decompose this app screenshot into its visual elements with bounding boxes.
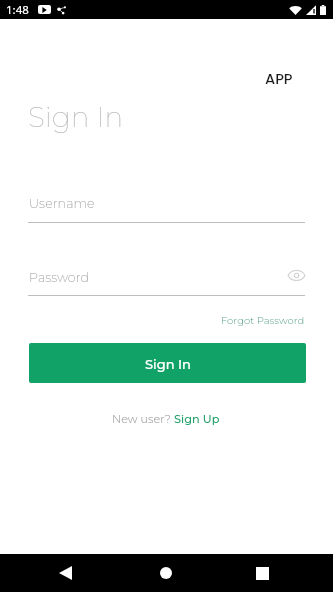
button[interactable]: Username [28, 186, 305, 223]
button[interactable]: Forgot Password [221, 314, 305, 326]
button[interactable]: Back [49, 557, 81, 589]
button[interactable]: Show password [285, 264, 307, 286]
staticText: Password [29, 270, 90, 285]
staticText: New user? [112, 412, 174, 426]
button[interactable]: Home [150, 557, 182, 589]
button[interactable]: APP [265, 69, 293, 89]
staticText: Username [29, 196, 95, 211]
staticText: Forgot Password [221, 314, 305, 326]
staticText: Sign Up [174, 412, 220, 426]
button[interactable]: Sign Up [174, 412, 220, 426]
staticText: Sign In [145, 356, 191, 372]
staticText: APP [265, 69, 293, 89]
staticText: 1:48 [6, 2, 29, 18]
staticText: Sign In [28, 100, 124, 134]
button[interactable]: Sign In [29, 343, 306, 383]
button[interactable]: Recent apps [246, 557, 278, 589]
button[interactable]: Password [28, 259, 305, 296]
